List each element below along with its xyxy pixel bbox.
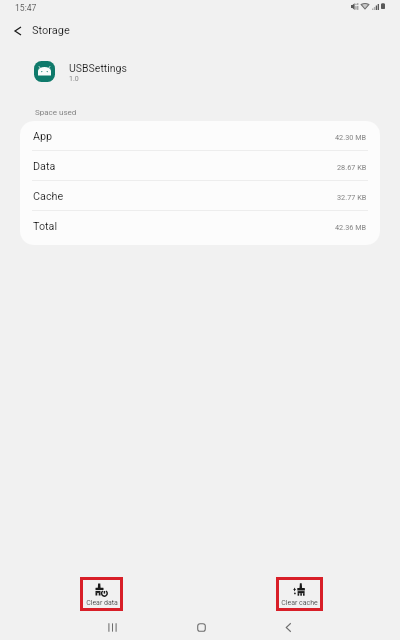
staticText: 1.0 [69,75,79,83]
button[interactable]: Clear cache [276,577,323,611]
staticText: 28.67 KB [337,163,367,172]
button[interactable]: Cache [20,181,380,211]
button[interactable]: Clear data [80,577,123,611]
staticText: 15:47 [15,3,37,13]
staticText: Cache [33,190,64,203]
button[interactable]: Back [281,617,295,637]
button[interactable]: Navigate up [6,19,30,43]
staticText: Total [33,220,58,233]
staticText: Storage [32,24,70,37]
staticText: USBSettings [69,62,127,74]
button[interactable]: Home [194,617,208,637]
staticText: Clear data [86,599,118,607]
staticText: 42.30 MB [335,133,367,142]
staticText: App [33,130,53,143]
button[interactable]: Recent apps [105,617,119,637]
button[interactable]: Total [20,211,380,241]
staticText: 32.77 KB [337,193,367,202]
staticText: Space used [35,108,77,117]
button[interactable]: Data [20,151,380,181]
staticText: Clear cache [281,599,318,607]
staticText: Data [33,160,56,173]
staticText: 42.36 MB [335,223,367,232]
button[interactable]: App [20,121,380,151]
